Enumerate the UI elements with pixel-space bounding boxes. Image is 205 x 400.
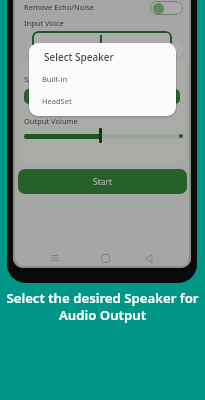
button[interactable]: Built-in <box>42 74 162 90</box>
button[interactable] <box>24 89 180 104</box>
staticText: Speaker <box>24 74 53 84</box>
button[interactable]: Start <box>18 169 187 194</box>
button[interactable] <box>32 31 172 53</box>
button[interactable]: HeadSet <box>42 96 162 112</box>
staticText: Select Speaker <box>44 50 114 64</box>
staticText: Start <box>93 176 113 188</box>
staticText: Built-in <box>42 74 68 84</box>
staticText: HeadSet <box>42 96 72 106</box>
staticText: Input Voice <box>24 18 64 28</box>
button[interactable] <box>150 1 183 15</box>
staticText: Remove Echo/Noise <box>24 2 95 12</box>
staticText: Select the desired Speaker for Audio Out… <box>6 289 199 323</box>
staticText: Output Volume <box>24 116 78 126</box>
